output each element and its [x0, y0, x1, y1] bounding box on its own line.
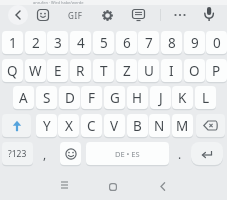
staticText: 9 — [191, 34, 199, 52]
button[interactable]: 7 — [138, 31, 159, 54]
staticText: . — [178, 146, 182, 162]
button[interactable]: R — [70, 59, 91, 82]
staticText: A — [19, 89, 28, 107]
button[interactable] — [191, 142, 223, 165]
staticText: 6 — [123, 34, 131, 52]
button[interactable]: Y — [36, 114, 57, 137]
staticText: Z — [123, 62, 131, 80]
staticText: DE • ES — [115, 149, 140, 159]
staticText: 3 — [54, 34, 62, 52]
staticText: T — [100, 62, 108, 80]
button[interactable]: B — [127, 114, 148, 137]
staticText: 0 — [213, 34, 221, 52]
staticText: C — [87, 117, 96, 135]
button[interactable]: D — [59, 86, 80, 109]
button[interactable]: 3 — [47, 31, 68, 54]
button[interactable] — [60, 181, 69, 189]
staticText: R — [76, 62, 85, 80]
button[interactable]: , — [36, 142, 54, 165]
button[interactable]: F — [81, 86, 102, 109]
button[interactable] — [196, 114, 225, 137]
staticText: F — [88, 89, 96, 107]
staticText: 4 — [77, 34, 85, 52]
button[interactable]: 9 — [184, 31, 205, 54]
staticText: Y — [43, 117, 51, 135]
button[interactable]: 6 — [116, 31, 137, 54]
button[interactable]: 8 — [161, 31, 182, 54]
staticText: H — [132, 89, 143, 107]
staticText: X — [65, 117, 73, 135]
staticText: E — [54, 62, 62, 80]
staticText: 8 — [168, 34, 176, 52]
button[interactable]: W — [25, 59, 46, 82]
button[interactable]: J — [150, 86, 171, 109]
staticText: anrufen · Wird habe/werde — [33, 0, 84, 5]
button[interactable]: DE • ES — [86, 142, 169, 165]
button[interactable]: N — [149, 114, 170, 137]
staticText: 5 — [100, 34, 108, 52]
staticText: ?123 — [8, 148, 27, 160]
button[interactable]: . — [172, 142, 188, 165]
staticText: 7 — [145, 34, 153, 52]
staticText: W — [29, 62, 42, 80]
button[interactable] — [60, 142, 81, 165]
button[interactable]: K — [172, 86, 193, 109]
staticText: GIF — [68, 10, 83, 21]
button[interactable]: 2 — [25, 31, 46, 54]
button[interactable]: O — [184, 59, 205, 82]
button[interactable]: A — [13, 86, 34, 109]
button[interactable]: C — [81, 114, 102, 137]
button[interactable]: I — [161, 59, 182, 82]
staticText: L — [202, 89, 210, 107]
button[interactable]: ?123 — [2, 142, 33, 165]
staticText: K — [178, 89, 187, 107]
button[interactable]: G — [104, 86, 125, 109]
button[interactable]: Q — [2, 59, 23, 82]
staticText: S — [43, 89, 51, 107]
button[interactable] — [132, 9, 145, 21]
button[interactable] — [202, 6, 216, 23]
staticText: B — [133, 117, 142, 135]
staticText: I — [169, 62, 174, 80]
staticText: , — [43, 146, 47, 162]
button[interactable] — [160, 182, 166, 191]
button[interactable]: 0 — [206, 31, 227, 54]
button[interactable] — [173, 12, 187, 18]
staticText: J — [159, 89, 163, 107]
staticText: N — [154, 117, 165, 135]
button[interactable]: P — [206, 59, 227, 82]
staticText: Q — [7, 62, 18, 80]
button[interactable]: X — [58, 114, 79, 137]
staticText: U — [144, 62, 154, 80]
staticText: 2 — [32, 34, 40, 52]
button[interactable]: V — [104, 114, 125, 137]
button[interactable]: 1 — [2, 31, 23, 54]
button[interactable] — [8, 5, 28, 25]
staticText: V — [110, 117, 119, 135]
staticText: G — [110, 89, 120, 107]
staticText: P — [212, 62, 221, 80]
button[interactable]: T — [93, 59, 114, 82]
button[interactable] — [101, 9, 114, 22]
button[interactable]: GIF — [64, 8, 86, 22]
button[interactable] — [37, 9, 49, 21]
button[interactable]: 4 — [70, 31, 91, 54]
staticText: M — [176, 117, 189, 135]
button[interactable]: S — [36, 86, 57, 109]
staticText: D — [65, 89, 75, 107]
staticText: O — [189, 62, 200, 80]
button[interactable] — [2, 114, 31, 137]
button[interactable]: M — [172, 114, 193, 137]
button[interactable]: E — [47, 59, 68, 82]
button[interactable]: U — [138, 59, 159, 82]
staticText: 1 — [9, 34, 17, 52]
button[interactable]: Z — [116, 59, 137, 82]
button[interactable] — [109, 183, 117, 191]
button[interactable]: 5 — [93, 31, 114, 54]
button[interactable]: L — [195, 86, 216, 109]
button[interactable]: H — [127, 86, 148, 109]
